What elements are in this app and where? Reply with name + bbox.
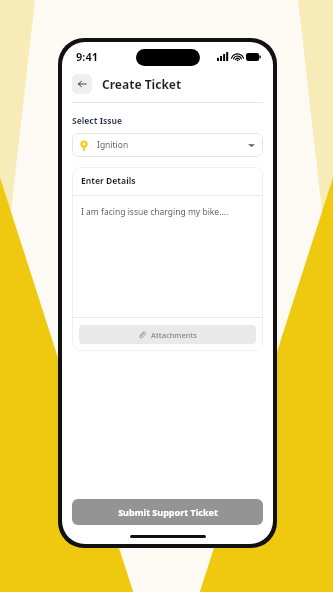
- staticText: 9:41: [76, 49, 98, 64]
- button[interactable]: Back: [72, 74, 92, 94]
- staticText: Create Ticket: [102, 76, 182, 92]
- button[interactable]: Submit Support Ticket: [72, 499, 263, 525]
- staticText: I am facing issue charging my bike....: [81, 206, 229, 218]
- button[interactable]: Attachments: [79, 325, 256, 344]
- staticText: Attachments: [151, 330, 197, 340]
- button[interactable]: I am facing issue charging my bike....: [72, 196, 263, 317]
- staticText: Ignition: [97, 139, 129, 151]
- staticText: Submit Support Ticket: [118, 506, 218, 518]
- staticText: Select Issue: [72, 115, 123, 127]
- staticText: Enter Details: [81, 175, 136, 187]
- button[interactable]: Ignition: [72, 133, 263, 157]
